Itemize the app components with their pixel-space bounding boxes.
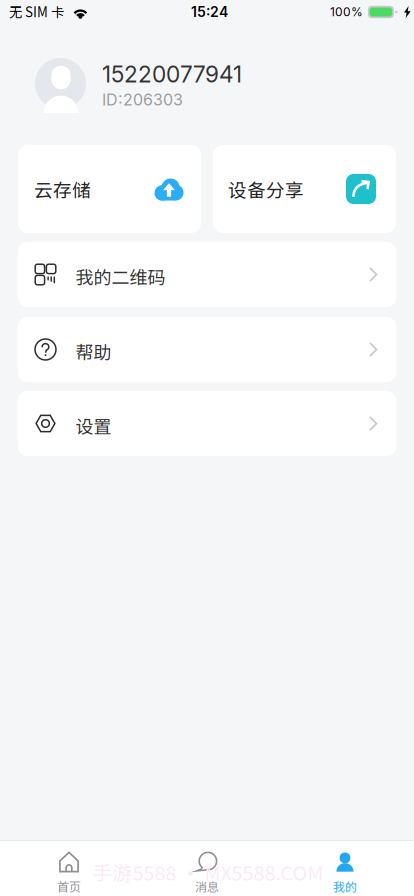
button[interactable]: 帮助 xyxy=(17,317,396,382)
button[interactable]: 我的 xyxy=(276,840,414,896)
button[interactable]: 我的二维码 xyxy=(17,242,396,307)
button[interactable]: 设备分享 xyxy=(213,145,396,233)
staticText: 我的 xyxy=(333,877,357,895)
staticText: 首页 xyxy=(57,877,81,895)
staticText: 云存储 xyxy=(34,175,91,202)
button[interactable]: 云存储 xyxy=(18,145,201,233)
staticText: 帮助 xyxy=(75,338,111,365)
staticText: 设置 xyxy=(75,412,111,439)
staticText: ID:206303 xyxy=(102,90,183,109)
staticText: 我的二维码 xyxy=(75,263,165,290)
staticText: 15:24 xyxy=(191,3,228,20)
staticText: 无 SIM 卡 xyxy=(9,2,64,21)
button[interactable]: 消息 xyxy=(138,840,276,896)
button[interactable]: 设置 xyxy=(17,391,396,456)
staticText: 手游5588 · MX5588.COM xyxy=(92,858,323,886)
staticText: 设备分享 xyxy=(228,175,304,202)
staticText: 15220077941 xyxy=(102,61,242,88)
staticText: 消息 xyxy=(195,877,219,895)
staticText: 100% xyxy=(330,5,363,19)
button[interactable]: 首页 xyxy=(0,840,138,896)
